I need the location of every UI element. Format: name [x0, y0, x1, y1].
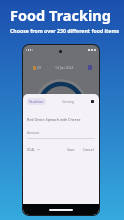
staticText: Serving	[62, 99, 74, 104]
button[interactable]: Save	[66, 147, 76, 152]
staticText: Amount	[27, 131, 40, 135]
staticText: Red Onion Spinach with Cheese	[27, 117, 81, 122]
button[interactable]: Cancel	[82, 147, 95, 152]
staticText: 14 Jan 2024	[55, 65, 74, 70]
staticText: KCAL	[27, 147, 36, 152]
staticText: Food Tracking	[10, 5, 111, 25]
button[interactable]: KCAL	[27, 147, 40, 152]
button[interactable]: Serving	[60, 98, 76, 105]
staticText: Nutrition	[29, 99, 44, 104]
button[interactable]: Nutrition	[27, 98, 46, 105]
button[interactable]: Apps	[90, 99, 95, 104]
staticText: Choose from over 230 different food item…	[10, 27, 120, 34]
staticText: 23	[37, 65, 41, 70]
staticText: Save	[67, 147, 75, 152]
staticText: Cancel	[83, 147, 94, 152]
